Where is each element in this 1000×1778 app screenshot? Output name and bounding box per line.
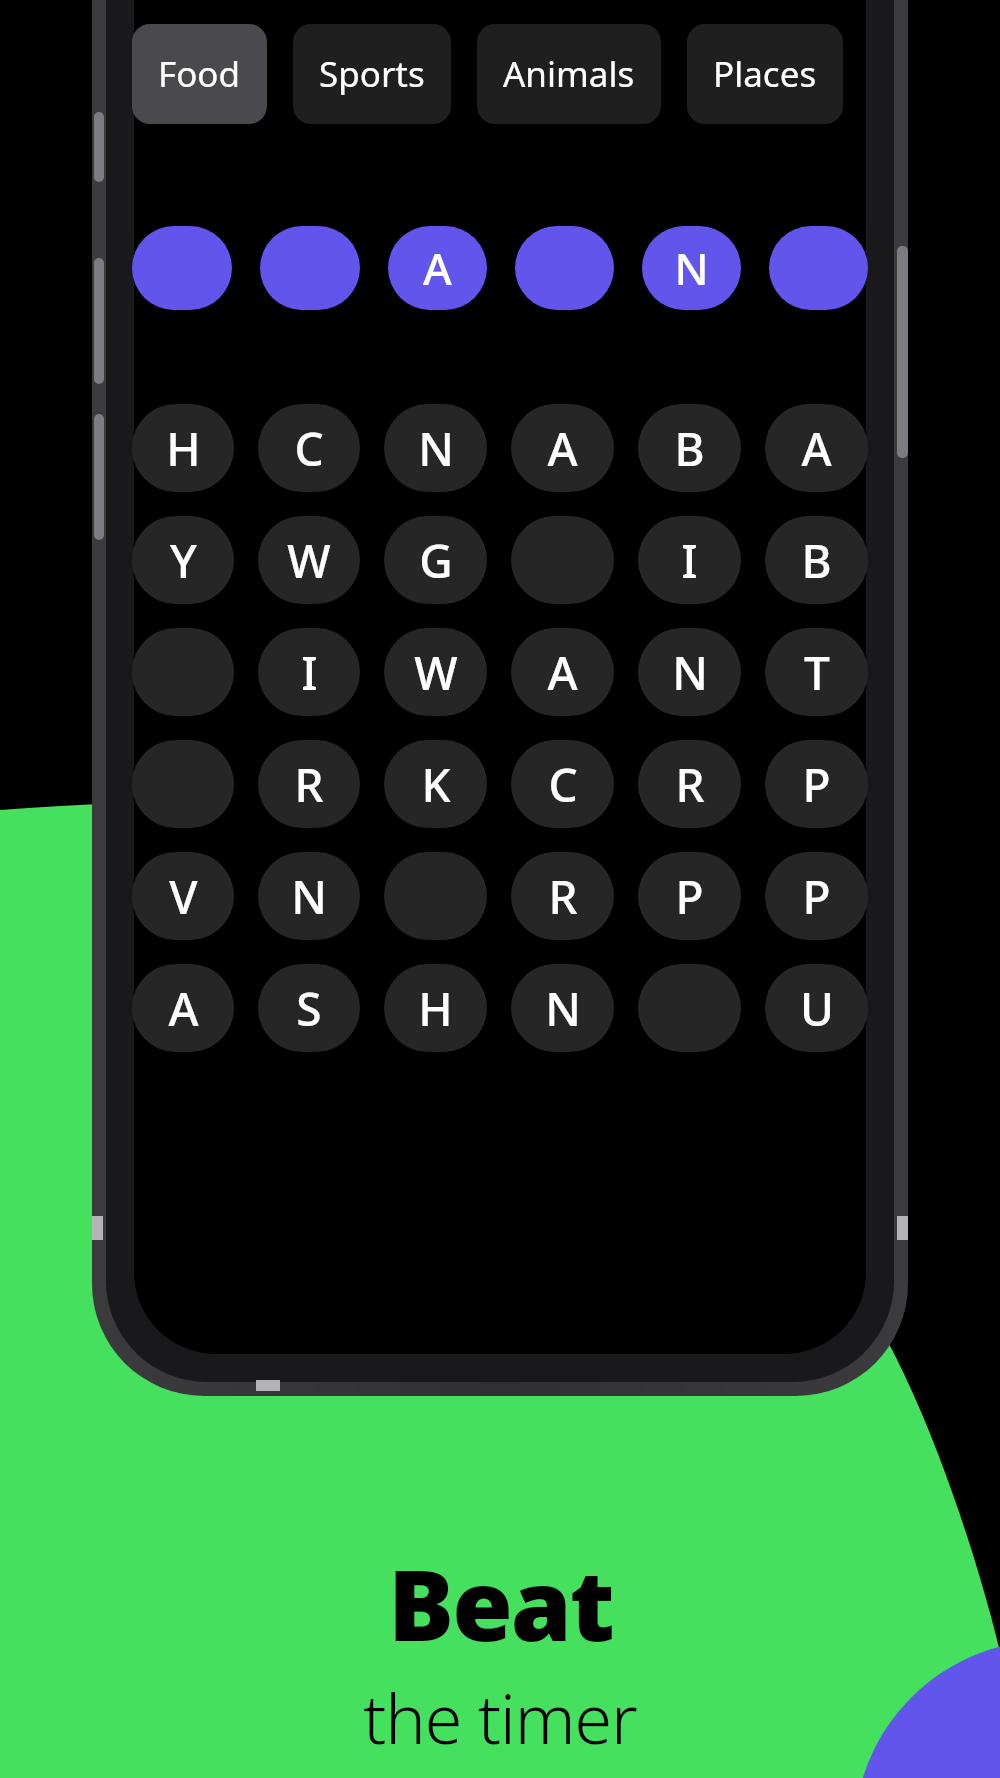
button[interactable]: I [638, 516, 741, 604]
staticText: A [547, 417, 578, 480]
staticText: A [801, 417, 832, 480]
staticText: I [301, 641, 318, 704]
button[interactable]: C [511, 740, 614, 828]
staticText: U [800, 977, 834, 1040]
button[interactable]: W [384, 628, 487, 716]
button[interactable]: Empty tile [132, 628, 234, 716]
button[interactable]: N [638, 628, 741, 716]
staticText: A [547, 641, 578, 704]
button[interactable]: R [258, 740, 360, 828]
staticText: A [423, 238, 452, 298]
button[interactable]: I [258, 628, 360, 716]
button[interactable]: H [384, 964, 487, 1052]
staticText: Places [713, 50, 817, 98]
staticText: N [672, 641, 708, 704]
button[interactable]: W [258, 516, 360, 604]
button[interactable]: N [258, 852, 360, 940]
staticText: S [296, 977, 322, 1040]
button[interactable]: S [258, 964, 360, 1052]
button[interactable]: Empty tile [132, 740, 234, 828]
button[interactable]: Empty tile [638, 964, 741, 1052]
button[interactable]: Food [132, 24, 267, 124]
staticText: K [421, 753, 451, 816]
button[interactable]: A [765, 404, 868, 492]
button[interactable]: Y [132, 516, 234, 604]
button[interactable]: R [638, 740, 741, 828]
button[interactable]: N [642, 226, 741, 310]
button[interactable]: H [132, 404, 234, 492]
staticText: H [418, 977, 453, 1040]
staticText: N [291, 865, 327, 928]
button[interactable]: Empty tile [260, 226, 360, 310]
staticText: T [804, 641, 830, 704]
staticText: I [681, 529, 698, 592]
button[interactable]: B [765, 516, 868, 604]
staticText: C [294, 417, 324, 480]
button[interactable]: B [638, 404, 741, 492]
staticText: Y [170, 529, 197, 592]
staticText: N [545, 977, 581, 1040]
staticText: B [801, 529, 832, 592]
button[interactable]: N [511, 964, 614, 1052]
button[interactable]: A [388, 226, 487, 310]
staticText: B [674, 417, 705, 480]
staticText: P [802, 865, 831, 928]
staticText: Sports [319, 50, 425, 98]
staticText: H [166, 417, 201, 480]
staticText: R [548, 865, 578, 928]
staticText: the timer [363, 1671, 637, 1764]
button[interactable]: A [132, 964, 234, 1052]
button[interactable]: P [765, 740, 868, 828]
staticText: R [675, 753, 705, 816]
staticText: R [294, 753, 324, 816]
button[interactable]: T [765, 628, 868, 716]
button[interactable]: Empty tile [769, 226, 868, 310]
staticText: N [418, 417, 454, 480]
button[interactable]: Sports [293, 24, 451, 124]
button[interactable]: U [765, 964, 868, 1052]
staticText: P [802, 753, 831, 816]
button[interactable]: R [511, 852, 614, 940]
button[interactable]: P [765, 852, 868, 940]
button[interactable]: P [638, 852, 741, 940]
button[interactable]: G [384, 516, 487, 604]
staticText: Food [158, 50, 241, 98]
button[interactable]: V [132, 852, 234, 940]
button[interactable]: Places [687, 24, 843, 124]
button[interactable]: Animals [477, 24, 661, 124]
staticText: Beat [388, 1536, 613, 1669]
button[interactable]: Empty tile [511, 516, 614, 604]
staticText: P [675, 865, 704, 928]
staticText: W [287, 529, 331, 592]
staticText: A [168, 977, 199, 1040]
button[interactable]: Empty tile [384, 852, 487, 940]
staticText: W [414, 641, 458, 704]
button[interactable]: Empty tile [132, 226, 232, 310]
staticText: Animals [503, 50, 635, 98]
staticText: G [419, 529, 453, 592]
button[interactable]: A [511, 628, 614, 716]
staticText: C [548, 753, 578, 816]
button[interactable]: A [511, 404, 614, 492]
button[interactable]: K [384, 740, 487, 828]
button[interactable]: Empty tile [515, 226, 614, 310]
staticText: N [674, 238, 709, 298]
button[interactable]: N [384, 404, 487, 492]
button[interactable]: C [258, 404, 360, 492]
staticText: V [169, 865, 198, 928]
